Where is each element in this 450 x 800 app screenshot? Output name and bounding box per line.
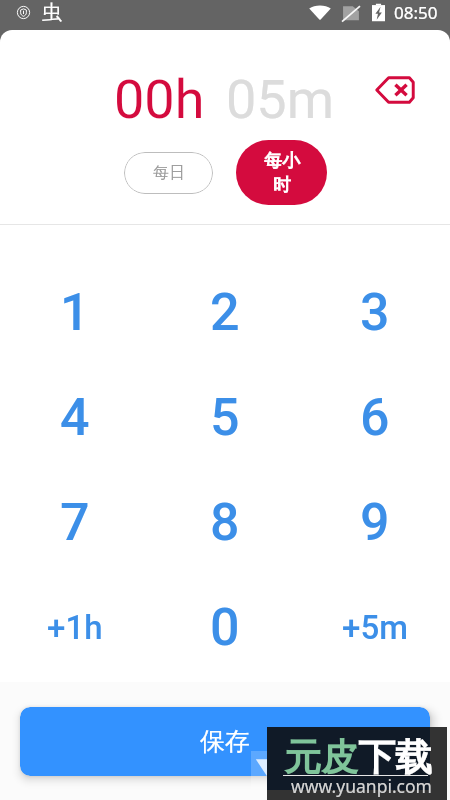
button[interactable]: 2 [150,260,300,365]
staticText: 6 [360,387,390,448]
staticText: 00h [114,68,205,131]
button[interactable]: 5 [150,365,300,470]
button[interactable]: +1h [0,575,150,680]
button[interactable]: Backspace [367,62,423,118]
button[interactable]: 9 [300,470,450,575]
button[interactable]: 4 [0,365,150,470]
staticText: 9 [360,492,390,553]
staticText: 5 [210,387,240,448]
button[interactable]: 6 [300,365,450,470]
staticText: 下载 [358,734,432,781]
staticText: +1h [47,608,103,647]
button[interactable]: 3 [300,260,450,365]
staticText: 05m [226,68,335,131]
staticText: 2 [210,282,240,343]
button[interactable]: 保存 [20,707,430,776]
button[interactable]: 每日 [124,152,213,194]
staticText: 08:50 [394,1,438,24]
staticText: 每小时 [260,150,304,196]
staticText: 0 [210,597,240,658]
button[interactable]: 1 [0,260,150,365]
staticText: 7 [60,492,90,553]
staticText: 虫 [42,0,62,25]
staticText: +5m [342,608,408,647]
staticText: 元皮 [284,734,358,781]
staticText: 4 [60,387,90,448]
staticText: 3 [360,282,390,343]
staticText: 保存 [200,726,250,757]
button[interactable]: 0 [150,575,300,680]
button[interactable]: +5m [300,575,450,680]
staticText: www.yuanpi.com [291,774,432,798]
button[interactable]: 8 [150,470,300,575]
button[interactable]: 7 [0,470,150,575]
staticText: 8 [210,492,240,553]
staticText: 每日 [153,163,185,183]
staticText: 1 [60,282,90,343]
button[interactable]: 每小时 [236,140,327,205]
